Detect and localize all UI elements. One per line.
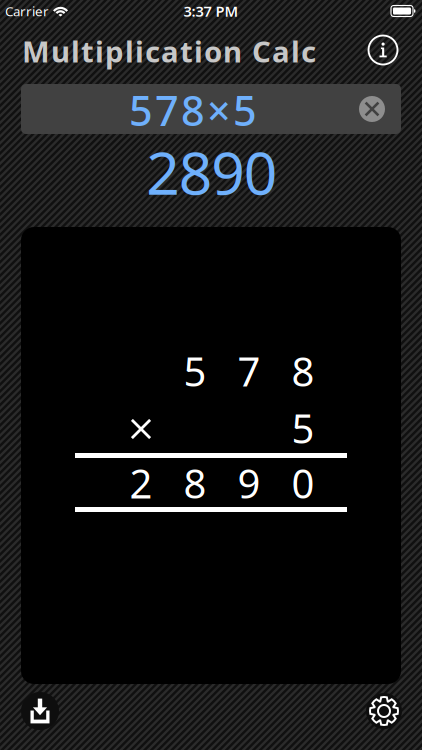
staticText: 578×5 <box>129 83 257 137</box>
staticText: 0 <box>291 456 314 509</box>
staticText: 2 <box>129 456 152 509</box>
staticText: 2890 <box>146 133 278 211</box>
staticText: 5 <box>183 344 206 397</box>
staticText: Multiplication Calc <box>22 31 316 70</box>
staticText: 3:37 PM <box>183 1 238 21</box>
staticText: Carrier <box>5 2 49 20</box>
button[interactable]: Settings <box>363 690 405 732</box>
staticText: 9 <box>237 456 260 509</box>
staticText: 5 <box>291 401 314 454</box>
staticText: 8 <box>291 344 314 397</box>
staticText: 8 <box>183 456 206 509</box>
button[interactable]: Save <box>19 690 61 732</box>
button[interactable]: Clear <box>357 94 387 124</box>
button[interactable]: Info <box>363 30 403 70</box>
staticText: 7 <box>237 344 260 397</box>
